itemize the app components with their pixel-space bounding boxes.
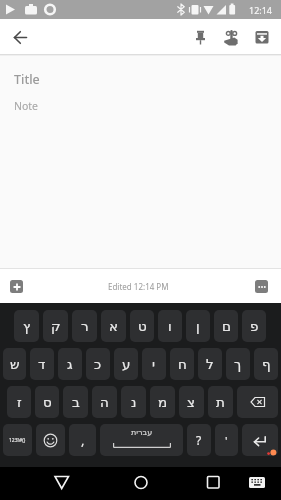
button[interactable] xyxy=(8,25,32,49)
staticText: צ xyxy=(187,394,196,410)
button[interactable] xyxy=(249,24,275,50)
staticText: עברית xyxy=(131,428,153,437)
button[interactable]: ו xyxy=(158,310,182,342)
button[interactable]: ט xyxy=(130,310,154,342)
button[interactable]: ק xyxy=(43,310,68,342)
button[interactable]: ר xyxy=(72,310,97,342)
button[interactable]: ב xyxy=(63,386,88,418)
staticText: ץ xyxy=(23,318,31,334)
staticText: ג xyxy=(67,356,73,372)
button[interactable]: ת xyxy=(208,386,233,418)
staticText: ב xyxy=(72,394,80,410)
button[interactable]: פ xyxy=(242,310,266,342)
staticText: ? xyxy=(196,432,202,448)
staticText: ט xyxy=(138,318,147,334)
button[interactable]: ן xyxy=(186,310,210,342)
staticText: ת xyxy=(216,394,225,410)
staticText: Title xyxy=(14,71,40,88)
button[interactable]: ש xyxy=(3,348,26,380)
staticText: Edited 12:14 PM xyxy=(108,281,169,292)
button[interactable]: ז xyxy=(7,386,31,418)
button[interactable] xyxy=(93,467,187,500)
staticText: פ xyxy=(250,318,259,334)
staticText: ע xyxy=(122,356,131,372)
button[interactable] xyxy=(36,424,65,456)
button[interactable]: א xyxy=(101,310,126,342)
staticText: נ xyxy=(131,394,137,410)
button[interactable]: ם xyxy=(214,310,238,342)
staticText: ר xyxy=(81,318,89,334)
button[interactable] xyxy=(218,24,244,50)
staticText: ם xyxy=(222,318,231,334)
staticText: ' xyxy=(225,433,228,448)
button[interactable]: ץ xyxy=(14,310,39,342)
button[interactable]: ה xyxy=(92,386,117,418)
staticText: ף xyxy=(262,356,271,372)
staticText: ה xyxy=(100,394,109,410)
button[interactable]: ' xyxy=(215,424,238,456)
button[interactable]: י xyxy=(142,348,166,380)
button[interactable]: ? xyxy=(187,424,211,456)
staticText: ש xyxy=(10,356,20,372)
button[interactable]: ף xyxy=(254,348,278,380)
staticText: ס xyxy=(43,394,52,410)
button[interactable]: ס xyxy=(35,386,59,418)
button[interactable] xyxy=(237,386,278,418)
staticText: ל xyxy=(206,356,214,372)
staticText: Note xyxy=(14,99,39,113)
button[interactable] xyxy=(187,24,213,50)
staticText: ח xyxy=(178,356,187,372)
button[interactable]: , xyxy=(69,424,96,456)
staticText: ק xyxy=(51,318,61,334)
staticText: ו xyxy=(168,318,172,334)
staticText: ד xyxy=(38,356,46,372)
staticText: א xyxy=(109,318,119,334)
button[interactable] xyxy=(10,280,23,293)
button[interactable]: ג xyxy=(58,348,82,380)
button[interactable]: 123!#() xyxy=(3,424,32,456)
staticText: מ xyxy=(158,394,168,410)
staticText: 12:14 xyxy=(249,4,273,16)
button[interactable]: ד xyxy=(30,348,54,380)
button[interactable]: ך xyxy=(226,348,250,380)
button[interactable]: צ xyxy=(179,386,204,418)
button[interactable]: כ xyxy=(86,348,110,380)
button[interactable]: ע xyxy=(114,348,138,380)
button[interactable] xyxy=(187,467,281,500)
button[interactable]: עברית xyxy=(100,424,183,456)
button[interactable] xyxy=(255,280,268,293)
staticText: י xyxy=(152,356,156,372)
staticText: 123!#() xyxy=(9,437,26,444)
button[interactable]: ל xyxy=(198,348,222,380)
button[interactable] xyxy=(0,467,93,500)
button[interactable]: נ xyxy=(121,386,146,418)
button[interactable]: מ xyxy=(150,386,175,418)
button[interactable]: ח xyxy=(170,348,194,380)
button[interactable] xyxy=(242,424,278,456)
staticText: , xyxy=(81,431,85,449)
staticText: ך xyxy=(234,356,242,372)
staticText: ן xyxy=(196,318,200,334)
staticText: כ xyxy=(94,356,102,372)
staticText: ז xyxy=(17,394,22,410)
